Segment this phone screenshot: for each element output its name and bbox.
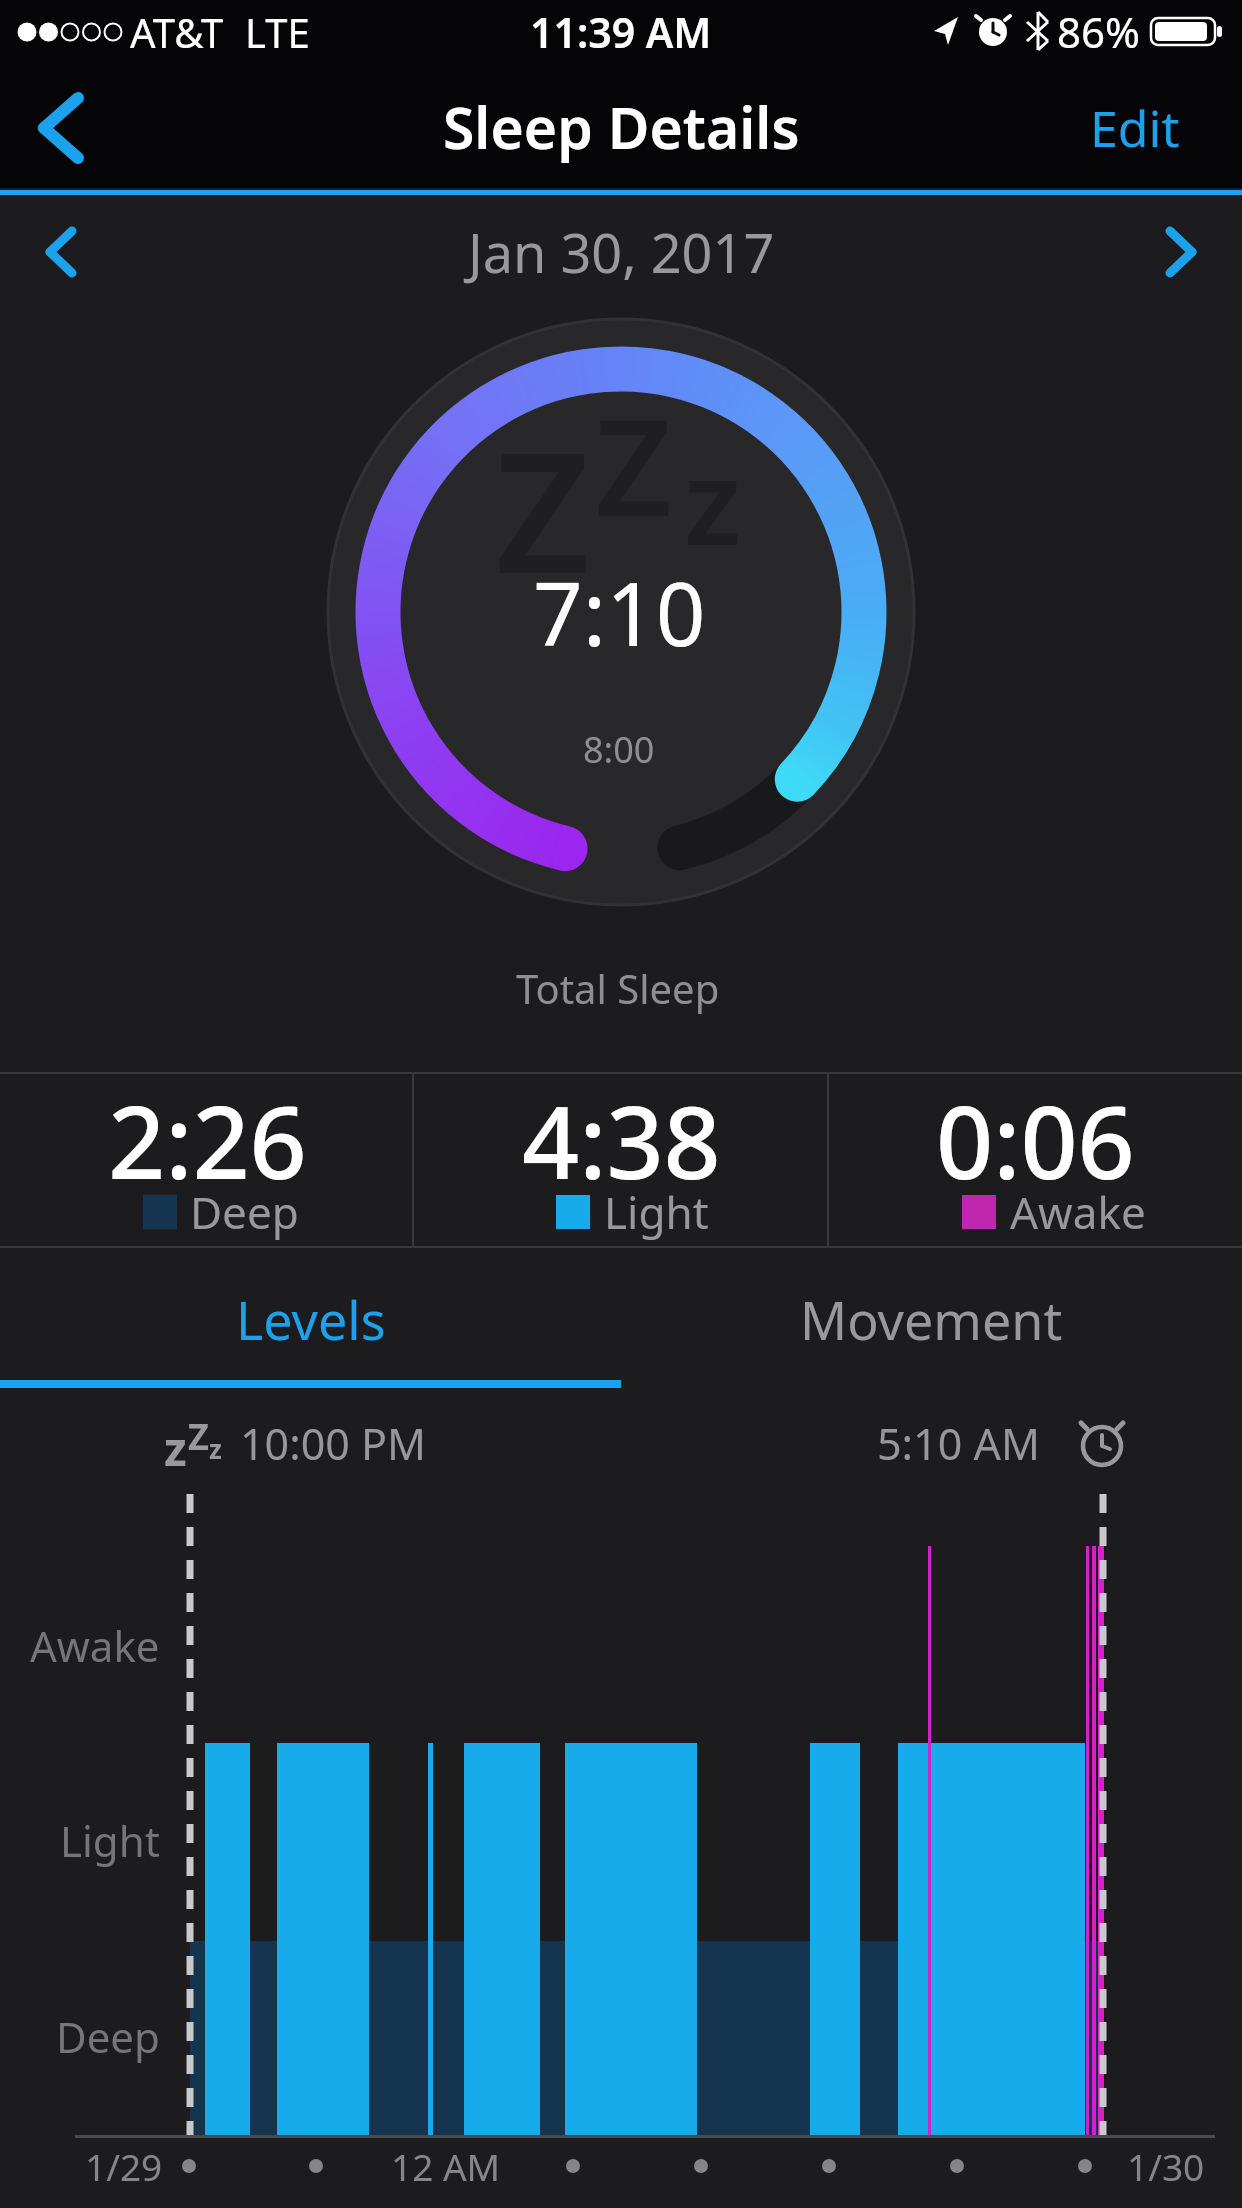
staticText: Levels	[236, 1284, 386, 1355]
button[interactable]: Levels	[0, 1258, 621, 1380]
staticText: z	[684, 419, 742, 580]
staticText: Z	[495, 396, 591, 622]
staticText: 7:10	[533, 553, 706, 671]
button[interactable]: Movement	[621, 1258, 1242, 1380]
staticText: 86%	[1057, 3, 1140, 60]
staticText: z	[164, 1417, 187, 1480]
staticText: Light	[60, 1812, 160, 1869]
staticText: 10:00 PM	[240, 1414, 427, 1473]
staticText: 4:38	[522, 1072, 721, 1208]
staticText: Total Sleep	[516, 961, 720, 1015]
staticText: Awake	[30, 1617, 160, 1674]
staticText: 2:26	[108, 1072, 307, 1208]
button[interactable]: Edit	[1070, 90, 1200, 166]
staticText: 5:10 AM	[877, 1414, 1040, 1473]
staticText: 8:00	[583, 725, 655, 774]
staticText: Awake	[1010, 1182, 1146, 1242]
button[interactable]	[1152, 218, 1212, 286]
staticText: Z	[595, 373, 673, 556]
button[interactable]	[30, 218, 90, 286]
staticText: 11:39 AM	[530, 4, 712, 60]
staticText: Edit	[1090, 94, 1180, 162]
staticText: Z	[188, 1412, 209, 1461]
staticText: 12 AM	[391, 2141, 501, 2191]
staticText: Movement	[800, 1284, 1063, 1355]
staticText: LTE	[245, 5, 310, 59]
staticText: 1/29	[85, 2141, 163, 2191]
staticText: Light	[604, 1182, 709, 1242]
staticText: Deep	[56, 2008, 160, 2065]
staticText: Deep	[190, 1182, 299, 1242]
button[interactable]	[24, 86, 104, 170]
staticText: Sleep Details	[443, 88, 800, 166]
staticText: AT&T	[130, 5, 224, 59]
staticText: 1/30	[1127, 2141, 1205, 2191]
staticText: z	[209, 1431, 222, 1466]
staticText: 0:06	[936, 1072, 1135, 1208]
staticText: Jan 30, 2017	[468, 215, 775, 289]
